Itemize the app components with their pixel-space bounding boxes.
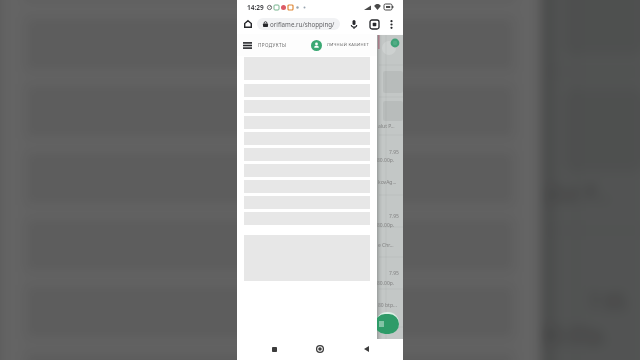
staticText: 80.00p. <box>377 157 395 164</box>
staticText: 80.00p. <box>377 222 395 229</box>
staticText: 80.00p. <box>377 280 395 287</box>
staticText: kovAg... <box>378 179 397 186</box>
button[interactable]: Back <box>357 340 375 358</box>
staticText: oriflame.ru/shopping/ <box>270 20 335 28</box>
button[interactable]: Home <box>311 340 329 358</box>
staticText: 7.95 <box>389 270 399 277</box>
staticText: 14:29 <box>247 3 264 12</box>
button[interactable]: Home <box>239 14 257 34</box>
button[interactable]: Switch tabs <box>367 14 381 34</box>
button[interactable]: ПРОДУКТЫ <box>258 34 287 56</box>
button[interactable]: Open menu <box>239 34 255 56</box>
staticText: e Chr... <box>378 242 394 249</box>
staticText: 7.95 <box>389 213 399 220</box>
button[interactable]: Voice search <box>347 14 361 34</box>
button[interactable]: More options <box>384 14 398 34</box>
button[interactable]: Add to cart <box>377 314 399 334</box>
staticText: 80 btp... <box>378 302 397 309</box>
button[interactable]: Recent apps <box>265 340 283 358</box>
button[interactable]: oriflame.ru/shopping/ <box>257 18 340 30</box>
staticText: alut P... <box>378 123 395 130</box>
staticText: ЛИЧНЫЙ КАБИНЕТ <box>327 42 369 48</box>
staticText: ПРОДУКТЫ <box>258 42 287 48</box>
button[interactable]: ЛИЧНЫЙ КАБИНЕТ <box>311 34 369 56</box>
staticText: 7.95 <box>389 149 399 156</box>
